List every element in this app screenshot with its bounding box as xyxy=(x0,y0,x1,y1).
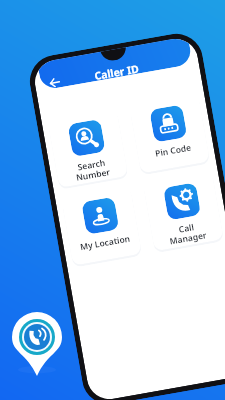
button[interactable]: Call Manager xyxy=(143,171,224,251)
button[interactable]: Search Number xyxy=(47,108,128,188)
button[interactable]: Pin Code xyxy=(129,93,210,173)
staticText: Call Manager xyxy=(167,219,208,247)
button[interactable]: Back xyxy=(47,75,62,90)
staticText: Caller ID xyxy=(93,61,140,83)
staticText: Pin Code xyxy=(154,141,192,160)
staticText: My Location xyxy=(79,232,131,253)
button[interactable]: My Location xyxy=(61,186,142,266)
staticText: Search Number xyxy=(73,156,111,183)
